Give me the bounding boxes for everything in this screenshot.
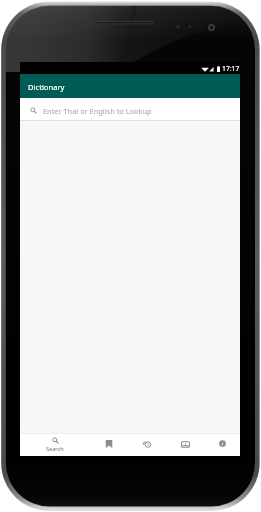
button[interactable]: History [128, 433, 166, 456]
button[interactable]: About [204, 433, 240, 456]
button[interactable]: Search [20, 433, 90, 456]
button[interactable]: Flashcards [166, 433, 204, 456]
staticText: 17:17 [222, 64, 240, 73]
staticText: Dictionary [28, 82, 65, 92]
staticText: Search [46, 445, 64, 453]
button[interactable]: Bookmarks [90, 433, 128, 456]
staticText: Enter Thai or English to Lookup [43, 106, 152, 116]
